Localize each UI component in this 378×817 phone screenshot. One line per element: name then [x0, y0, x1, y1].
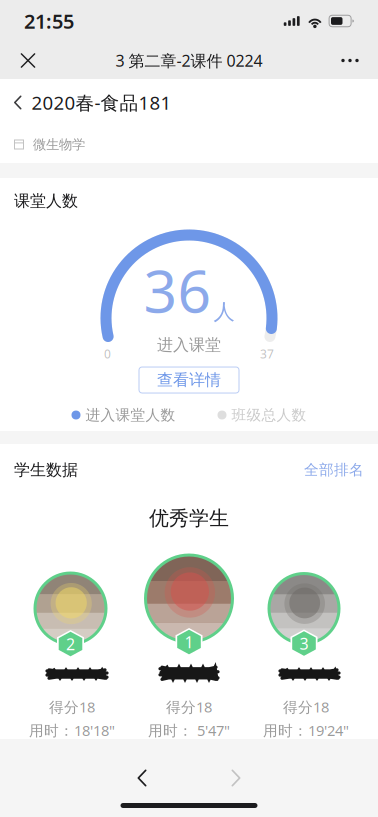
- staticText: 微生物学: [33, 136, 85, 153]
- staticText: 3: [299, 633, 308, 654]
- staticText: 班级总人数: [231, 406, 306, 424]
- staticText: 36: [143, 251, 211, 329]
- staticText: 2020春-食品181: [31, 90, 171, 115]
- staticText: 人: [213, 299, 234, 325]
- button[interactable]: 全部排名: [304, 461, 364, 479]
- staticText: 优秀学生: [149, 506, 229, 531]
- staticText: 学生数据: [14, 460, 78, 480]
- staticText: 进入课堂人数: [85, 406, 175, 424]
- staticText: 查看详情: [157, 370, 221, 390]
- button[interactable]: Close: [5, 42, 51, 79]
- button[interactable]: 查看详情: [139, 367, 239, 393]
- staticText: 得分18: [166, 697, 212, 716]
- button[interactable]: More options: [327, 42, 373, 79]
- button[interactable]: Next: [212, 756, 260, 800]
- staticText: 进入课堂: [157, 335, 221, 355]
- staticText: 0: [104, 346, 111, 362]
- button[interactable]: 2020春-食品181: [0, 79, 378, 126]
- staticText: 课堂人数: [14, 191, 78, 211]
- staticText: 得分18: [49, 697, 95, 716]
- staticText: 21:55: [24, 8, 74, 34]
- staticText: 用时： 5'47": [148, 720, 230, 740]
- staticText: 用时：19'24": [263, 720, 349, 740]
- staticText: 用时：18'18": [29, 720, 115, 740]
- button[interactable]: Previous: [118, 756, 166, 800]
- staticText: 3 第二章-2课件 0224: [115, 50, 262, 71]
- staticText: 2: [66, 633, 75, 655]
- staticText: 得分18: [283, 697, 329, 716]
- staticText: 37: [260, 346, 274, 362]
- staticText: 1: [184, 631, 193, 653]
- staticText: 全部排名: [304, 461, 364, 479]
